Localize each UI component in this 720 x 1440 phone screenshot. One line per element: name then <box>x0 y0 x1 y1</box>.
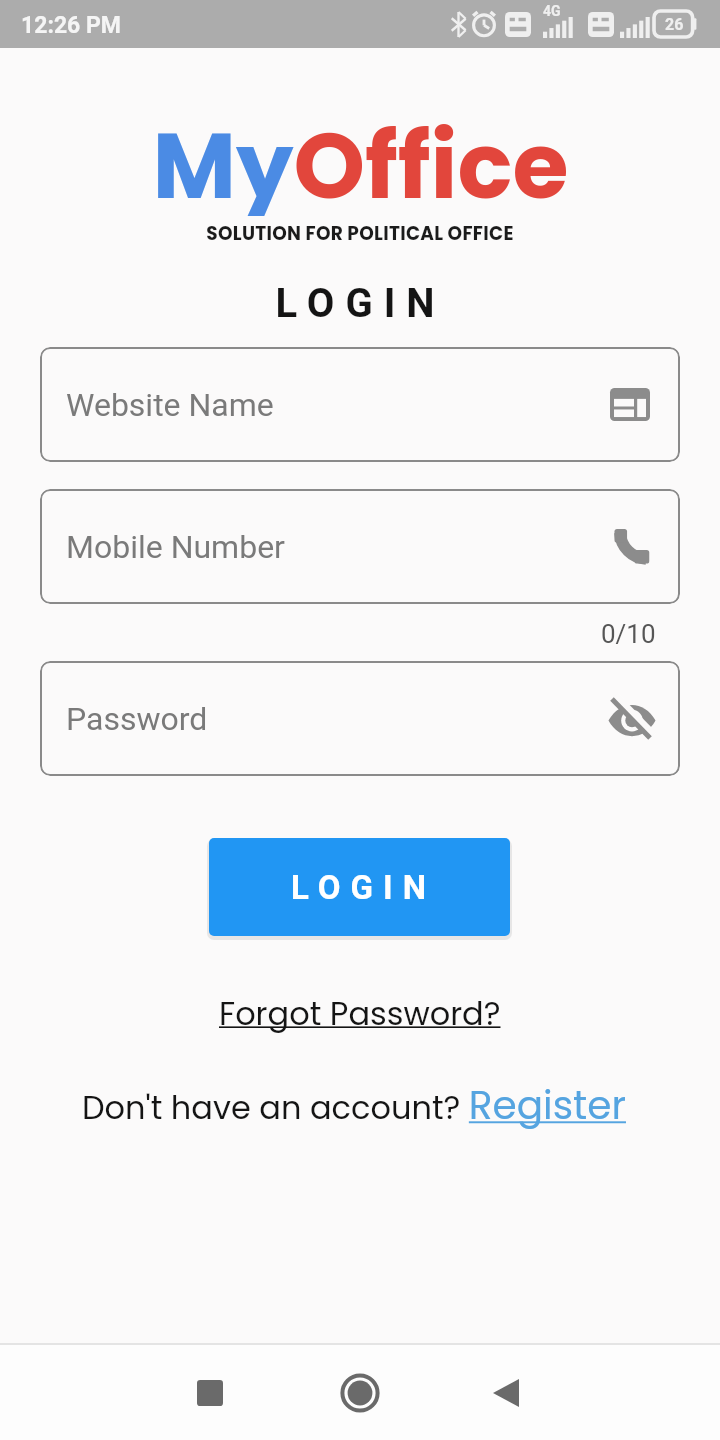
staticText: 12:26 PM <box>21 12 121 39</box>
button[interactable] <box>182 1365 238 1421</box>
staticText: Forgot Password? <box>219 991 501 1036</box>
staticText: SOLUTION FOR POLITICAL OFFICE <box>206 221 514 247</box>
staticText: 26 <box>665 15 684 34</box>
button[interactable] <box>332 1365 388 1421</box>
button[interactable]: Don't have an account? Register <box>0 1072 714 1138</box>
staticText: LOGIN <box>291 868 437 907</box>
staticText: Website Name <box>66 386 274 424</box>
button[interactable]: Password <box>40 661 680 776</box>
button[interactable]: Forgot Password? <box>0 988 720 1038</box>
staticText: Don't have an account? Register <box>82 1078 626 1133</box>
button[interactable]: Website Name <box>40 347 680 462</box>
staticText: 4G <box>543 3 561 19</box>
staticText: Mobile Number <box>66 528 285 566</box>
button[interactable] <box>478 1365 534 1421</box>
staticText: Password <box>66 700 208 738</box>
button[interactable]: Mobile Number <box>40 489 680 604</box>
staticText: 0/10 <box>601 619 656 649</box>
staticText: LOGIN <box>275 280 446 327</box>
button[interactable]: LOGIN <box>209 838 510 936</box>
staticText: MyOffice <box>152 102 569 216</box>
